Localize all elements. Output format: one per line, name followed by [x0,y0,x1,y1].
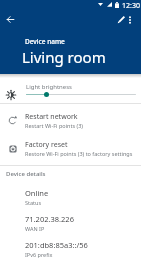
staticText: Light brightness [26,83,72,91]
button[interactable]: Edit [112,10,131,29]
staticText: Factory reset [25,140,68,150]
staticText: Restart Wi-Fi points (3) [25,122,83,129]
button[interactable]: Light brightness [0,78,141,103]
staticText: 201:db8:85a3::/56 [25,240,88,250]
staticText: Status [25,199,42,206]
button[interactable]: Factory reset [0,133,141,164]
staticText: 12:30 [122,1,140,11]
staticText: Restore Wi-Fi points (3) to factory sett… [25,150,133,157]
staticText: IPv6 prefix [25,251,53,258]
button[interactable]: More options [122,12,138,28]
staticText: 71.202.38.226 [25,214,74,224]
staticText: Online [25,188,49,198]
staticText: Living room [22,47,106,67]
button[interactable]: Restart network [0,105,141,136]
staticText: Device name [25,37,65,46]
button[interactable]: Back [0,9,20,29]
staticText: Restart network [25,112,78,122]
staticText: WAN IP [25,225,45,232]
staticText: Device details [6,170,46,178]
